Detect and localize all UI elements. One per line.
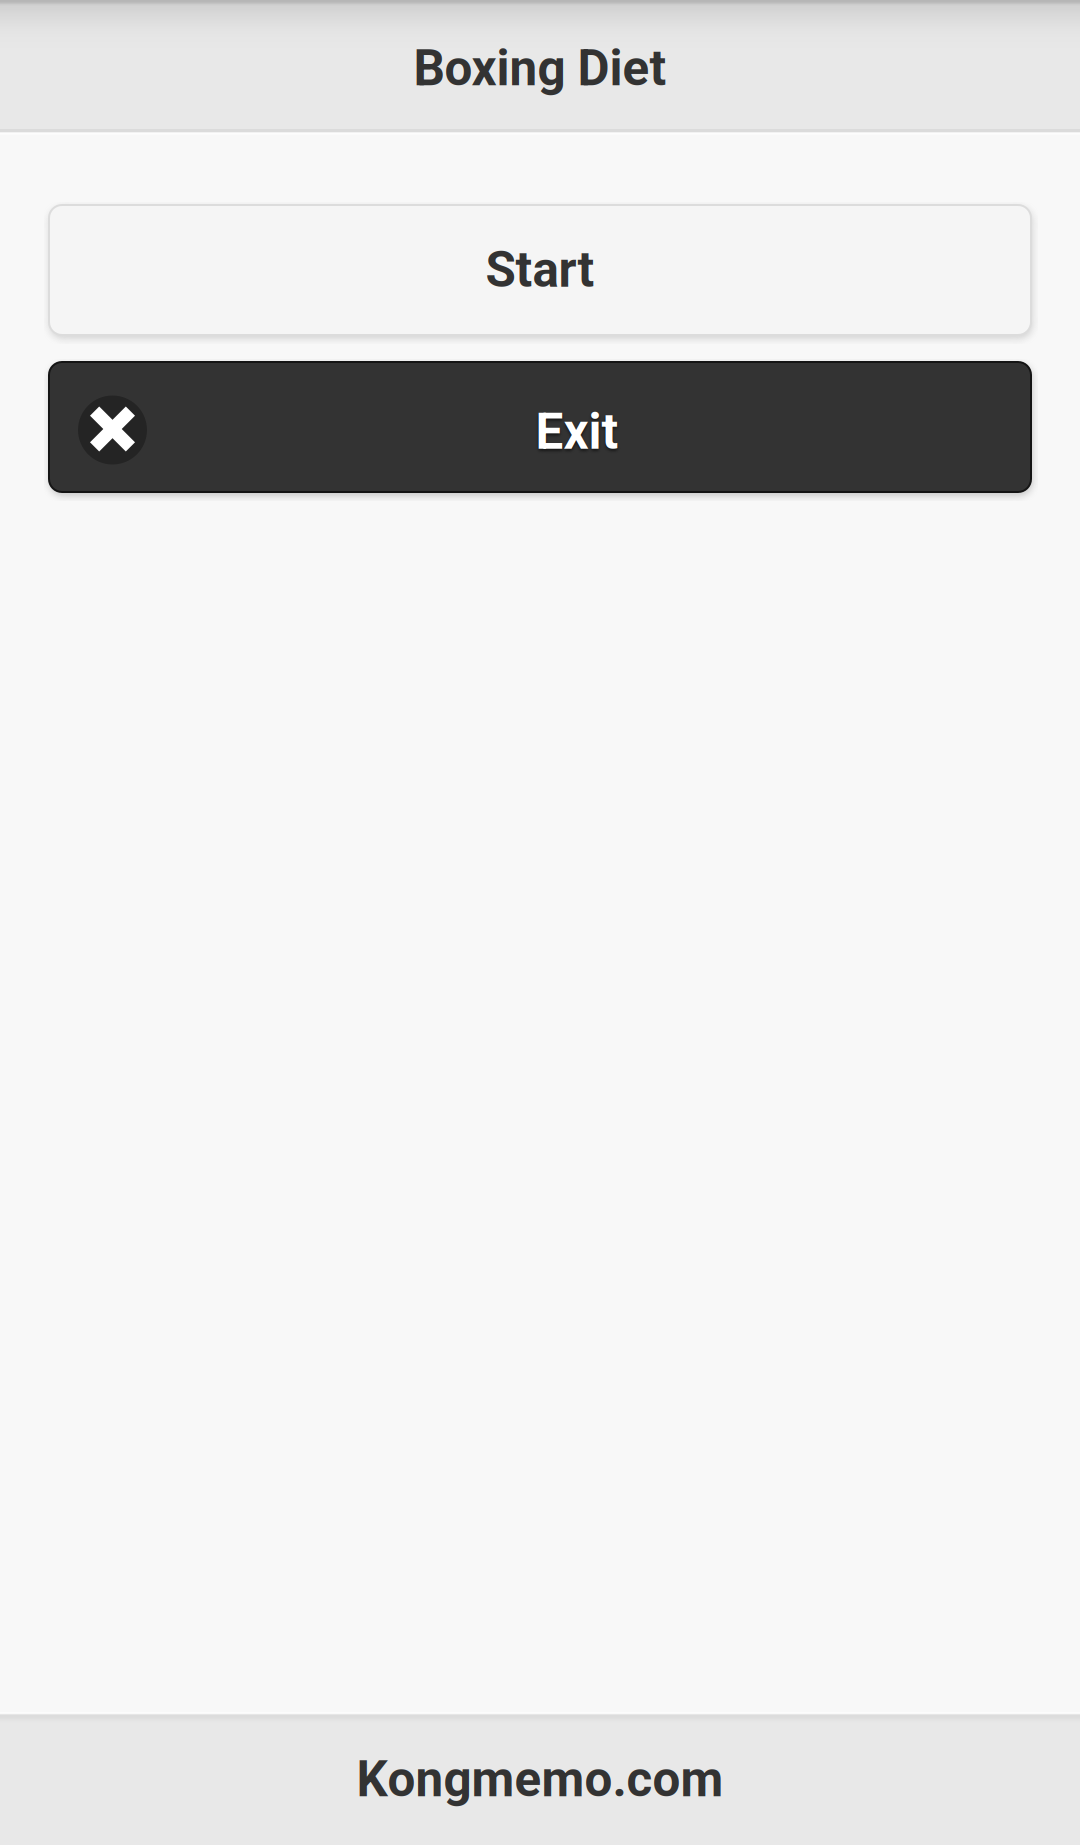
staticText: Exit	[535, 403, 618, 461]
button[interactable]: Exit	[49, 362, 1031, 492]
staticText: Kongmemo.com	[356, 1751, 723, 1808]
staticText: Start	[485, 241, 594, 299]
staticText: Boxing Diet	[413, 40, 666, 97]
button[interactable]: Start	[49, 205, 1031, 335]
